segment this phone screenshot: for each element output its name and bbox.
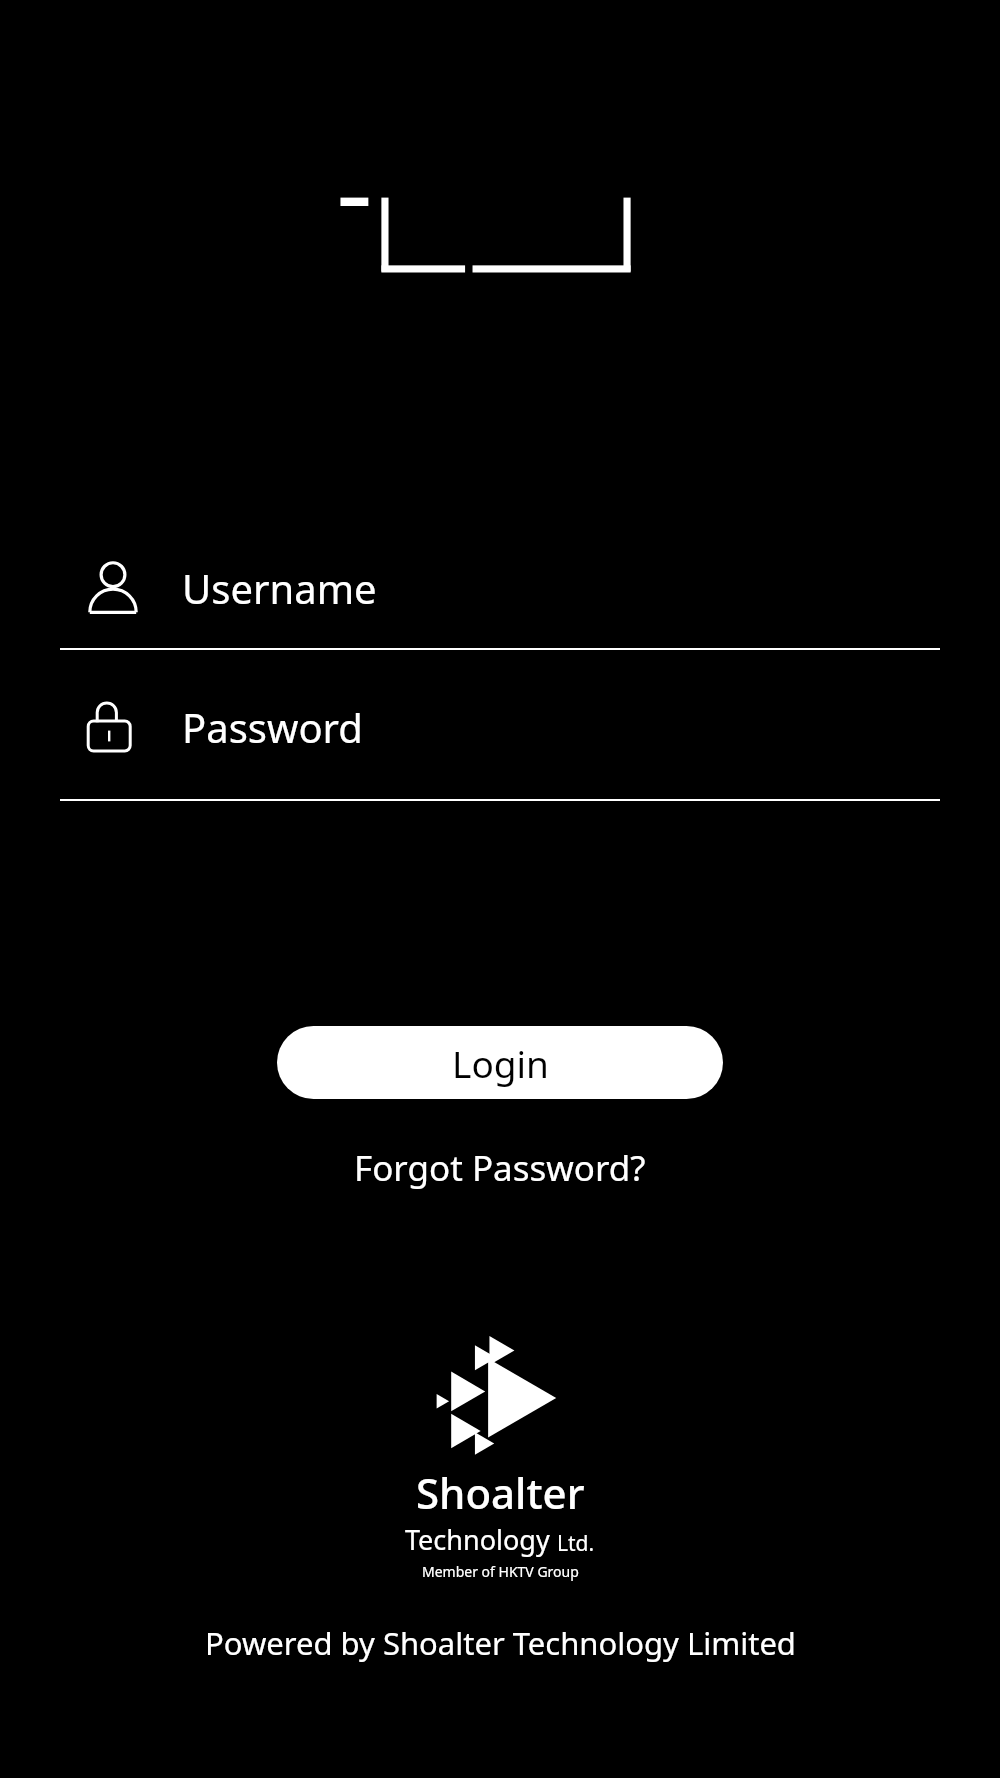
staticText: Forgot Password? [354, 1144, 646, 1192]
button[interactable]: Login [277, 1026, 723, 1099]
staticText: Powered by Shoalter Technology Limited [205, 1622, 796, 1664]
staticText: Login [452, 1038, 549, 1088]
button[interactable]: Forgot Password? [342, 1138, 658, 1198]
staticText: Ltd. [557, 1529, 595, 1558]
button[interactable]: Username [0, 525, 1000, 650]
staticText: Username [182, 561, 377, 615]
other: EESE logo [320, 178, 692, 290]
button[interactable]: Password [0, 653, 1000, 801]
staticText: Password [182, 700, 363, 754]
staticText: Member of HKTV Group [422, 1562, 579, 1581]
staticText: Technology [405, 1521, 550, 1558]
staticText: Shoalter [416, 1464, 585, 1521]
